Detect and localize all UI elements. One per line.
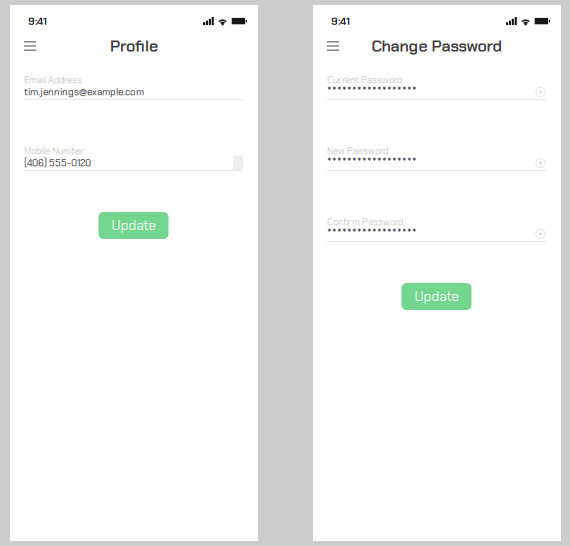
button[interactable]: Menu [19, 36, 41, 56]
staticText: Profile [110, 36, 158, 56]
button[interactable]: Update [98, 212, 168, 239]
staticText: 9:41 [28, 14, 47, 28]
staticText: ****************** [327, 154, 417, 172]
button[interactable]: Show current password [535, 87, 546, 97]
button[interactable]: Update [401, 283, 471, 310]
staticText: ****************** [327, 225, 417, 243]
staticText: Update [111, 217, 155, 234]
button[interactable]: Show new password [535, 158, 546, 168]
staticText: New Password [327, 145, 388, 157]
staticText: 9:41 [331, 14, 350, 28]
staticText: Mobile Number [24, 145, 85, 157]
staticText: (406) 555-0120 [24, 157, 91, 169]
staticText: tim.jennings@example.com [24, 86, 144, 98]
staticText: ****************** [327, 83, 417, 101]
staticText: Current Password [327, 74, 402, 86]
staticText: Update [414, 288, 458, 305]
button[interactable]: Show confirm password [535, 229, 546, 239]
staticText: Email Address [24, 74, 82, 86]
staticText: Change Password [371, 36, 502, 56]
button[interactable]: Menu [322, 36, 344, 56]
staticText: Confirm Password [327, 216, 403, 228]
